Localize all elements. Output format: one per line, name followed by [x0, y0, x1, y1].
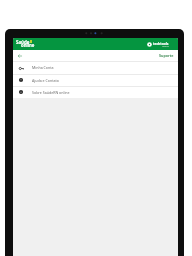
staticText: techtools: [153, 41, 169, 45]
button[interactable]: Sobre SaúdeRN online: [13, 86, 178, 98]
button[interactable]: Ajuda e Contato: [13, 74, 178, 86]
button[interactable]: Minha Conta: [13, 61, 178, 74]
staticText: Minha Conta: [32, 65, 54, 70]
staticText: Suporte: [159, 53, 174, 58]
button[interactable]: Back: [13, 50, 178, 61]
staticText: Ajuda e Contato: [32, 78, 60, 83]
staticText: digital: [162, 44, 169, 47]
other: Back: [17, 53, 23, 59]
staticText: online: [21, 42, 35, 48]
staticText: Saúde: [16, 39, 30, 45]
staticText: Sobre SaúdeRN online: [32, 90, 70, 95]
